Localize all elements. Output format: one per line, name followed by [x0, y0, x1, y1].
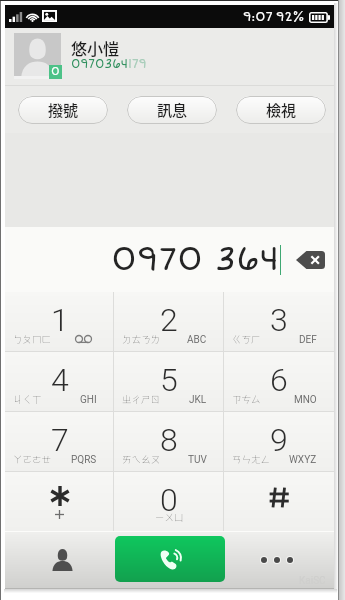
staticText: ㄍㄎㄏ	[232, 332, 261, 346]
button[interactable]: 訊息	[127, 96, 217, 124]
staticText: ㄐㄑㄒ	[13, 392, 42, 406]
staticText: 0	[51, 65, 60, 79]
staticText: 9	[270, 421, 288, 459]
button[interactable]: 檢視	[236, 96, 326, 124]
staticText: 檢視	[266, 99, 297, 121]
staticText: WXYZ	[289, 454, 317, 466]
staticText: ㄅㄆㄇㄈ	[13, 332, 52, 346]
staticText: 4	[51, 361, 69, 399]
staticText: 0970364	[71, 57, 128, 72]
button[interactable]: 4	[5, 352, 114, 411]
button[interactable]: 撥號	[18, 96, 108, 124]
button[interactable]	[5, 472, 114, 531]
staticText: PQRS	[71, 454, 97, 466]
staticText: 3	[270, 301, 288, 339]
button[interactable]: Call	[115, 536, 225, 582]
staticText: ㄞㄟㄠㄡ	[122, 452, 161, 466]
staticText: ㄢㄣㄤㄥ	[232, 452, 271, 466]
staticText: JKL	[189, 394, 207, 406]
staticText: ㄧㄨㄩ	[155, 510, 184, 524]
staticText: ㄉㄊㄋㄌ	[122, 332, 161, 346]
button[interactable]: More options	[234, 531, 320, 589]
staticText: 6	[270, 361, 288, 399]
staticText: 92%	[276, 9, 305, 25]
staticText: 訊息	[157, 99, 188, 121]
staticText: 1	[51, 301, 69, 339]
staticText: ㄚㄛㄜㄝ	[13, 452, 52, 466]
button[interactable]: 1	[5, 292, 114, 351]
button[interactable]	[224, 472, 334, 531]
button[interactable]: 0	[114, 472, 224, 531]
staticText: GHI	[80, 394, 97, 406]
button[interactable]: 6	[224, 352, 334, 411]
staticText: 179	[128, 57, 147, 72]
staticText: DEF	[299, 334, 317, 346]
button[interactable]: Contacts	[19, 531, 105, 589]
staticText: TUV	[188, 454, 207, 466]
staticText: 0	[160, 481, 178, 519]
staticText: MNO	[294, 394, 317, 406]
staticText: 0970 364	[111, 239, 280, 280]
button[interactable]: 9	[224, 412, 334, 471]
button[interactable]: 3	[224, 292, 334, 351]
staticText: 撥號	[48, 99, 79, 121]
staticText: 9:07	[243, 9, 273, 25]
button[interactable]: 2	[114, 292, 224, 351]
staticText: ABC	[187, 334, 207, 346]
staticText: 悠小愷	[71, 36, 120, 59]
staticText: 5	[160, 361, 178, 399]
button[interactable]: 8	[114, 412, 224, 471]
staticText: 8	[160, 421, 178, 459]
staticText: ㄓㄔㄕㄖ	[122, 392, 161, 406]
staticText: 2	[160, 301, 178, 339]
button[interactable]: Backspace	[296, 251, 325, 269]
staticText: 7	[51, 421, 69, 459]
button[interactable]: 5	[114, 352, 224, 411]
staticText: ㄗㄘㄙ	[232, 392, 261, 406]
button[interactable]: 7	[5, 412, 114, 471]
